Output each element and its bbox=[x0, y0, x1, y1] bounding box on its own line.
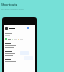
staticText: Do what matters most bbox=[1, 8, 24, 11]
button[interactable]: Status bbox=[5, 26, 35, 30]
staticText: Shortcuts bbox=[1, 2, 18, 7]
